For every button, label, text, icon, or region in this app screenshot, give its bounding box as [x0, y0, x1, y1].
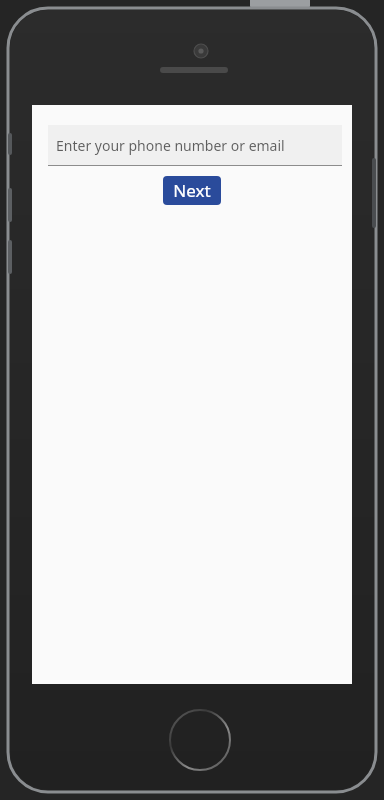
- button[interactable]: Enter your phone number or email: [48, 125, 342, 166]
- button[interactable]: Next: [163, 176, 221, 205]
- staticText: Enter your phone number or email: [56, 136, 285, 155]
- staticText: Next: [173, 179, 211, 202]
